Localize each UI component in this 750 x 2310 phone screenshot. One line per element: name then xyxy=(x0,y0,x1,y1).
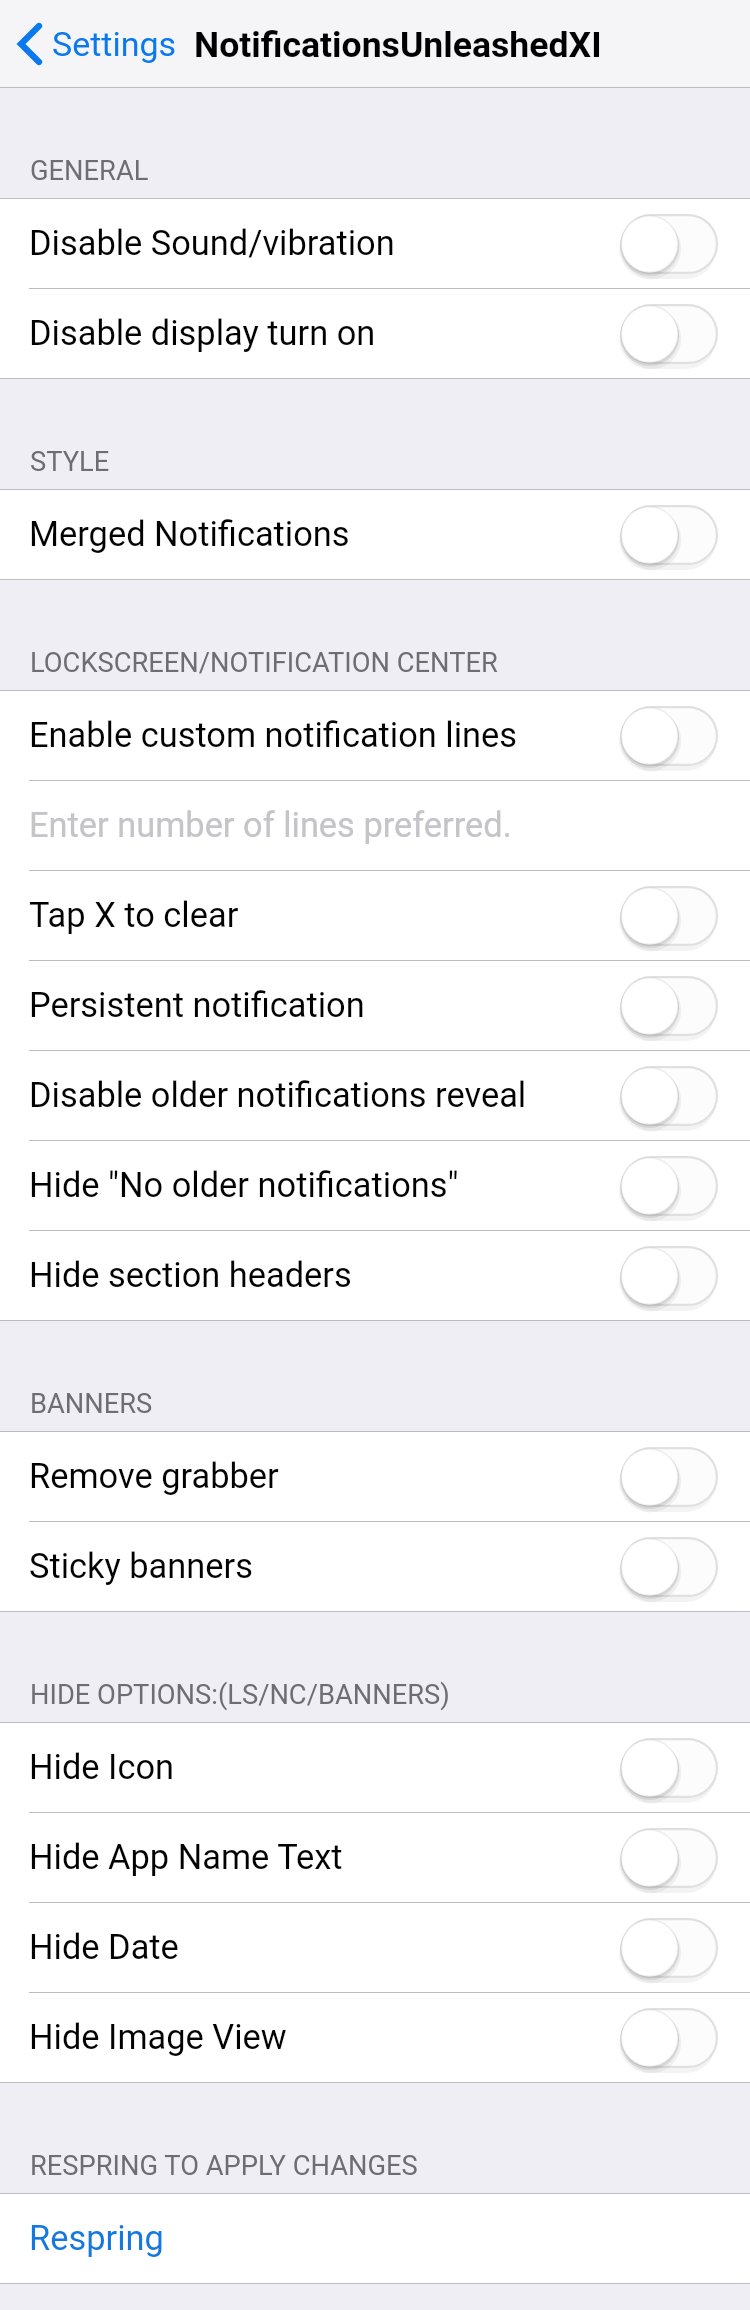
button[interactable]: Hide Image View toggle, off xyxy=(621,1995,732,2081)
staticText: Disable Sound/vibration xyxy=(29,223,395,263)
button[interactable]: Sticky banners xyxy=(0,1522,750,1612)
staticText: Hide Date xyxy=(29,1927,179,1967)
button[interactable]: Disable display turn on xyxy=(0,289,750,379)
button[interactable]: Disable Sound/vibration toggle, off xyxy=(621,201,732,287)
button[interactable]: Hide Icon toggle, off xyxy=(621,1725,732,1811)
button[interactable]: Hide App Name Text toggle, off xyxy=(621,1815,732,1901)
button[interactable]: Enter number of lines preferred. xyxy=(0,781,750,871)
button[interactable]: Hide "No older notifications" xyxy=(0,1141,750,1231)
staticText: Sticky banners xyxy=(29,1546,253,1586)
staticText: Merged Notifications xyxy=(29,514,350,554)
button[interactable]: Merged Notifications toggle, off xyxy=(621,492,732,578)
staticText: Hide section headers xyxy=(29,1255,352,1295)
button[interactable]: Back xyxy=(16,20,177,68)
staticText: Disable display turn on xyxy=(29,313,376,353)
button[interactable]: Hide Icon xyxy=(0,1723,750,1813)
staticText: RESPRING TO APPLY CHANGES xyxy=(30,2150,418,2182)
staticText: Enter number of lines preferred. xyxy=(29,805,512,845)
button[interactable]: Tap X to clear xyxy=(0,871,750,961)
button[interactable]: Hide App Name Text xyxy=(0,1813,750,1903)
staticText: Disable older notifications reveal xyxy=(29,1075,527,1115)
staticText: Remove grabber xyxy=(29,1456,279,1496)
staticText: BANNERS xyxy=(30,1388,153,1420)
staticText: Hide Image View xyxy=(29,2017,287,2057)
staticText: HIDE OPTIONS:(LS/NC/BANNERS) xyxy=(30,1679,450,1711)
button[interactable]: Enable custom notification lines xyxy=(0,691,750,781)
button[interactable]: Disable Sound/vibration xyxy=(0,199,750,289)
staticText: Persistent notification xyxy=(29,985,365,1025)
button[interactable]: Remove grabber xyxy=(0,1432,750,1522)
staticText: Hide "No older notifications" xyxy=(29,1165,459,1205)
button[interactable]: Disable display turn on toggle, off xyxy=(621,291,732,377)
button[interactable]: Persistent notification toggle, off xyxy=(621,963,732,1049)
other: Back xyxy=(16,20,40,68)
button[interactable]: Hide Date toggle, off xyxy=(621,1905,732,1991)
button[interactable]: Disable older notifications reveal toggl… xyxy=(621,1053,732,1139)
button[interactable]: Respring xyxy=(0,2194,750,2284)
staticText: NotificationsUnleashedXI xyxy=(194,24,602,66)
staticText: Enable custom notification lines xyxy=(29,715,518,755)
staticText: Hide App Name Text xyxy=(29,1837,343,1877)
button[interactable]: Disable older notifications reveal xyxy=(0,1051,750,1141)
staticText: GENERAL xyxy=(30,155,149,187)
button[interactable]: Hide "No older notifications" toggle, of… xyxy=(621,1143,732,1229)
staticText: STYLE xyxy=(30,446,110,478)
staticText: Respring xyxy=(29,2218,164,2258)
button[interactable]: Hide Date xyxy=(0,1903,750,1993)
button[interactable]: Hide Image View xyxy=(0,1993,750,2083)
button[interactable]: Hide section headers xyxy=(0,1231,750,1321)
button[interactable]: Merged Notifications xyxy=(0,490,750,580)
button[interactable]: Persistent notification xyxy=(0,961,750,1051)
staticText: LOCKSCREEN/NOTIFICATION CENTER xyxy=(30,647,498,679)
button[interactable]: Enable custom notification lines toggle,… xyxy=(621,693,732,779)
staticText: Hide Icon xyxy=(29,1747,175,1787)
button[interactable]: Hide section headers toggle, off xyxy=(621,1233,732,1319)
staticText: Tap X to clear xyxy=(29,895,239,935)
button[interactable]: Remove grabber toggle, off xyxy=(621,1434,732,1520)
button[interactable]: Sticky banners toggle, off xyxy=(621,1524,732,1610)
button[interactable]: Tap X to clear toggle, off xyxy=(621,873,732,959)
staticText: Settings xyxy=(52,24,177,64)
